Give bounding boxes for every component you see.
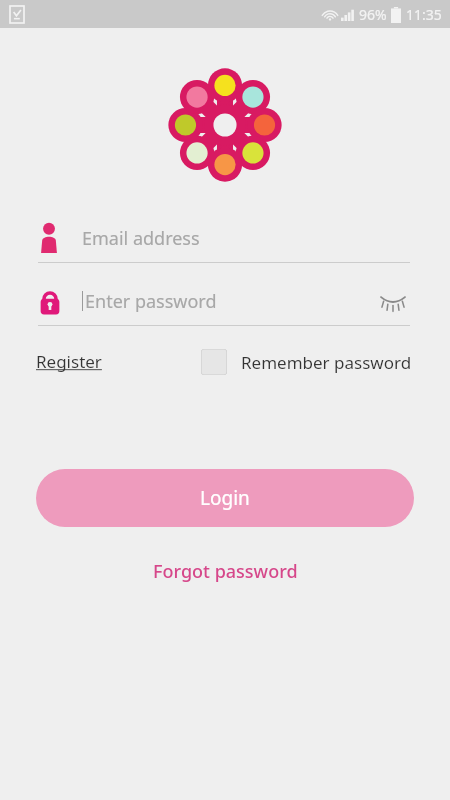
button[interactable]: Remember password [201,345,412,379]
staticText: Forgot password [153,559,298,584]
button[interactable]: Show password [376,284,410,318]
button[interactable]: Email address [0,214,450,262]
staticText: Register [36,350,102,373]
button[interactable]: Forgot password [141,553,310,590]
staticText: 96% [359,5,387,24]
staticText: 11:35 [406,5,442,24]
button[interactable]: Register [36,344,102,379]
staticText: Enter password [85,289,217,314]
staticText: Remember password [241,351,412,374]
button[interactable]: Enter password [0,277,450,325]
staticText: Login [200,485,250,511]
button[interactable]: Login [36,469,414,527]
staticText: Email address [82,226,200,251]
